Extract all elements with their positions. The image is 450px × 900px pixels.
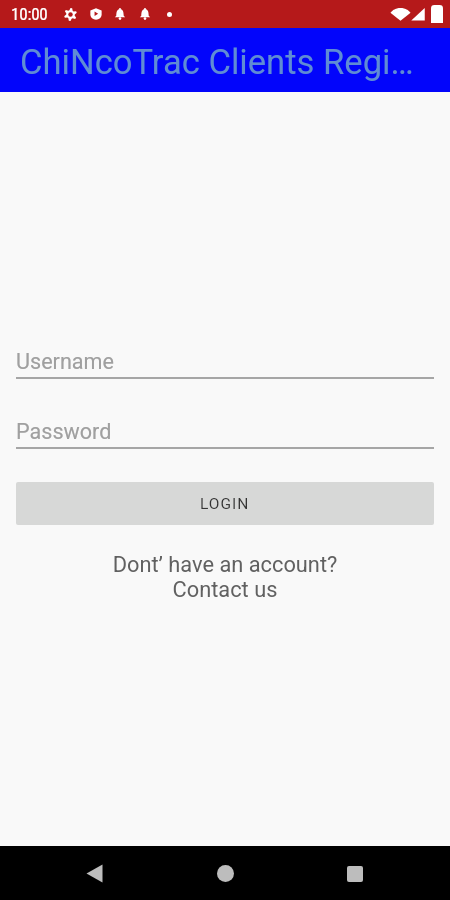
button[interactable]: Back — [71, 850, 118, 897]
staticText: Username — [16, 349, 114, 374]
button[interactable]: Recent apps — [331, 850, 378, 897]
button[interactable]: Dont’ have an account? Contact us — [0, 552, 450, 602]
staticText: LOGIN — [200, 495, 250, 513]
button[interactable]: Home — [202, 850, 249, 897]
button[interactable]: Username — [16, 349, 434, 379]
button[interactable]: Password — [16, 419, 434, 449]
staticText: Password — [16, 419, 112, 444]
staticText: ChiNcoTrac Clients Registration — [20, 42, 418, 83]
staticText: 10:00 — [11, 4, 48, 24]
button[interactable]: LOGIN — [16, 482, 434, 525]
